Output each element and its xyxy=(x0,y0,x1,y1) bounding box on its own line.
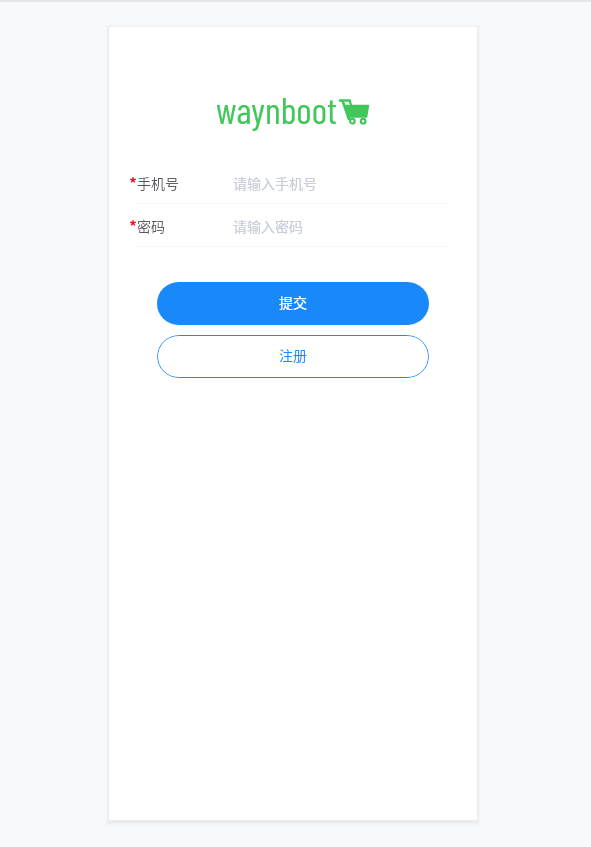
staticText: 请输入手机号 xyxy=(233,173,317,193)
button[interactable]: Required xyxy=(130,161,449,204)
other: Shopping cart logo xyxy=(338,96,370,124)
staticText: 手机号 xyxy=(137,173,179,193)
other: Required xyxy=(130,177,136,183)
staticText: 提交 xyxy=(279,292,307,312)
button[interactable]: 提交 xyxy=(157,282,429,325)
staticText: 请输入密码 xyxy=(233,216,303,236)
staticText: waynboot xyxy=(216,87,337,131)
button[interactable]: 注册 xyxy=(157,335,429,378)
staticText: 密码 xyxy=(137,216,165,236)
staticText: 注册 xyxy=(279,345,307,365)
other: Required xyxy=(130,220,136,226)
button[interactable]: Required xyxy=(130,204,449,247)
